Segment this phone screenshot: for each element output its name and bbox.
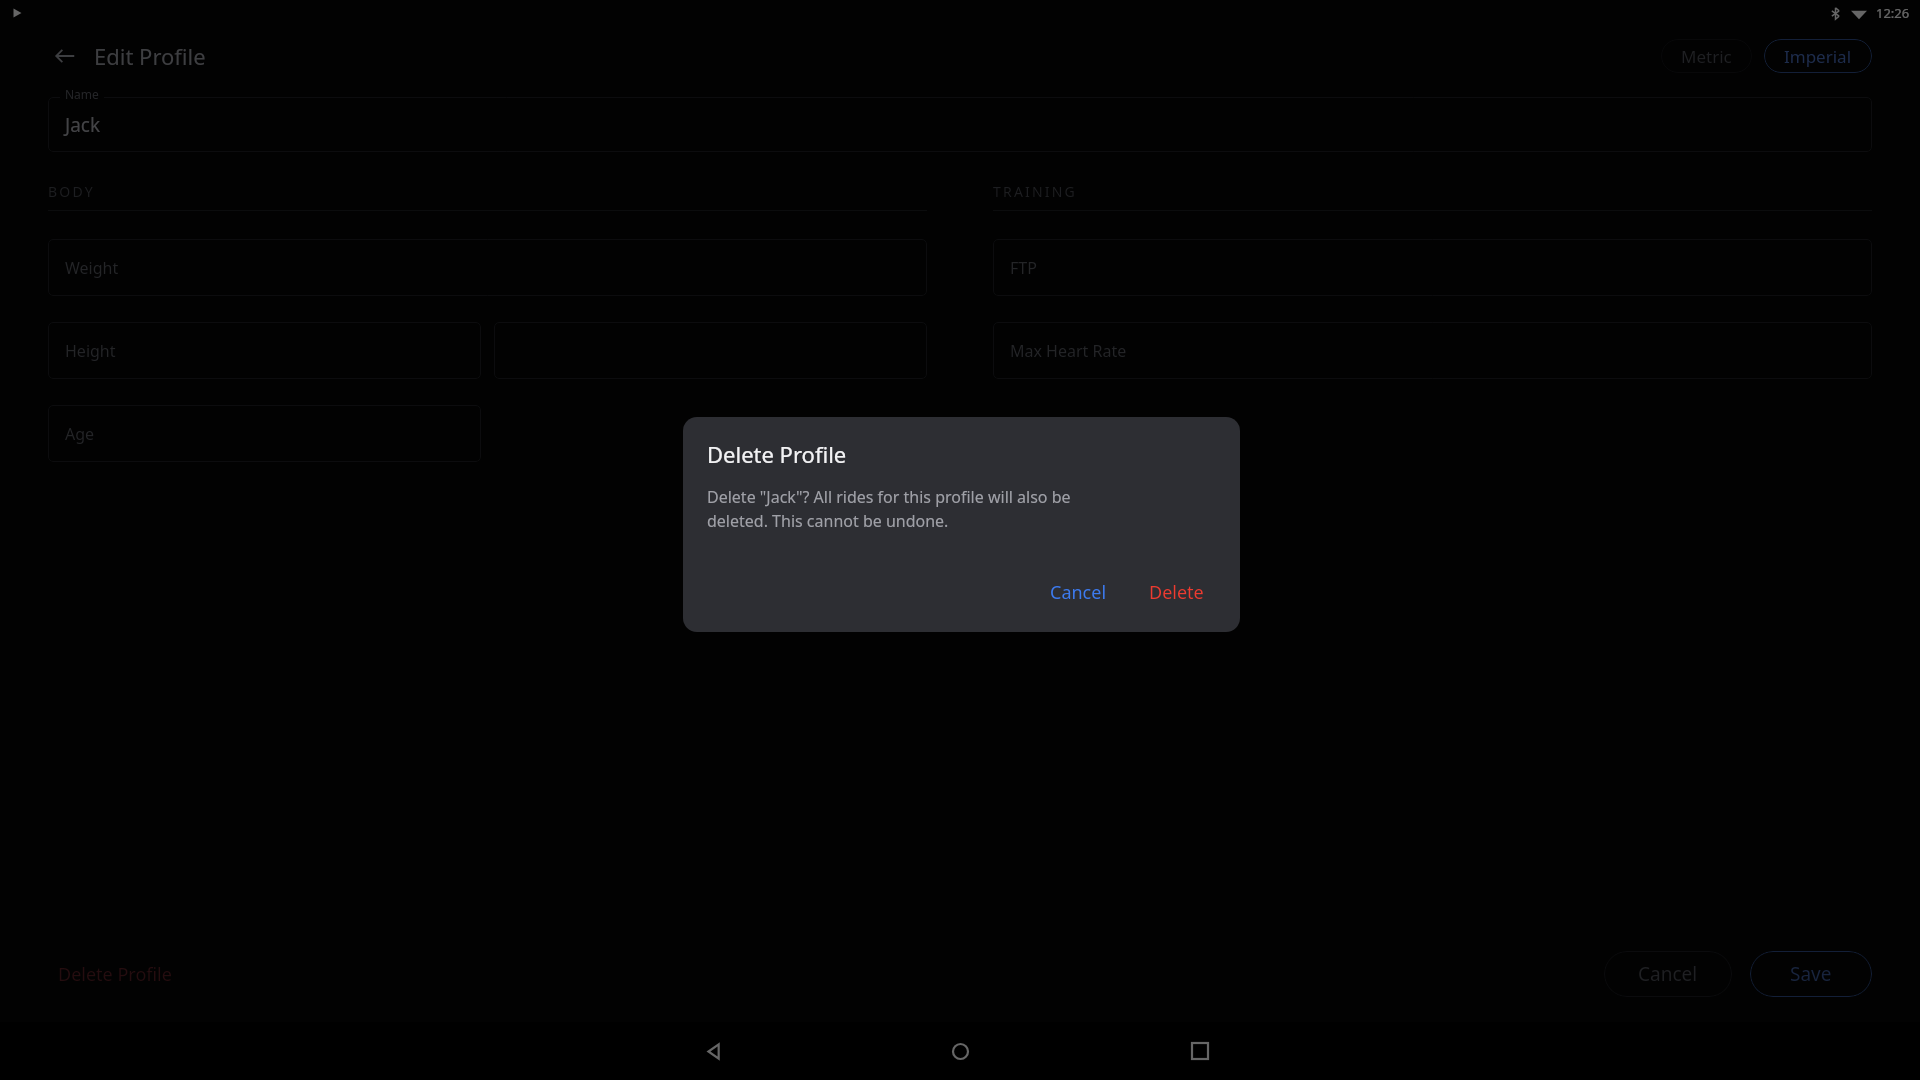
staticText: Delete "Jack"? All rides for this profil… — [707, 486, 1071, 532]
staticText: Cancel — [1638, 961, 1698, 987]
staticText: Imperial — [1784, 45, 1852, 68]
staticText: Name — [65, 86, 99, 102]
staticText: Edit Profile — [94, 41, 206, 71]
staticText: FTP — [1010, 257, 1037, 279]
staticText: Cancel — [1050, 580, 1107, 605]
button[interactable]: Back — [690, 1027, 738, 1075]
button[interactable]: Back — [48, 39, 82, 73]
button[interactable]: Weight — [48, 239, 927, 296]
staticText: Height — [65, 340, 116, 362]
staticText: Jack — [65, 112, 101, 138]
button[interactable]: Jack — [48, 97, 1872, 152]
staticText: BODY — [48, 182, 95, 201]
button[interactable]: Cancel — [1038, 573, 1119, 612]
button[interactable]: Imperial — [1764, 39, 1872, 73]
button[interactable]: Max Heart Rate — [993, 322, 1872, 379]
staticText: 12:26 — [1876, 4, 1910, 22]
button[interactable]: Cancel — [1604, 951, 1732, 997]
staticText: TRAINING — [993, 182, 1078, 201]
staticText: Save — [1790, 961, 1832, 987]
button[interactable]: Height — [48, 322, 481, 379]
staticText: Max Heart Rate — [1010, 340, 1127, 362]
button[interactable]: Home — [936, 1027, 984, 1075]
staticText: Delete — [1149, 580, 1204, 605]
button[interactable]: Delete Profile — [48, 954, 182, 995]
staticText: Age — [65, 423, 95, 445]
button[interactable]: Recent apps — [1176, 1027, 1224, 1075]
staticText: Delete Profile — [58, 962, 172, 987]
staticText: Delete Profile — [707, 439, 847, 469]
staticText: Metric — [1681, 45, 1732, 68]
button[interactable]: Metric — [1661, 39, 1752, 73]
button[interactable]: Age — [48, 405, 481, 462]
button[interactable]: Delete — [1137, 573, 1216, 612]
button[interactable]: Save — [1750, 951, 1872, 997]
staticText: Weight — [65, 257, 119, 279]
